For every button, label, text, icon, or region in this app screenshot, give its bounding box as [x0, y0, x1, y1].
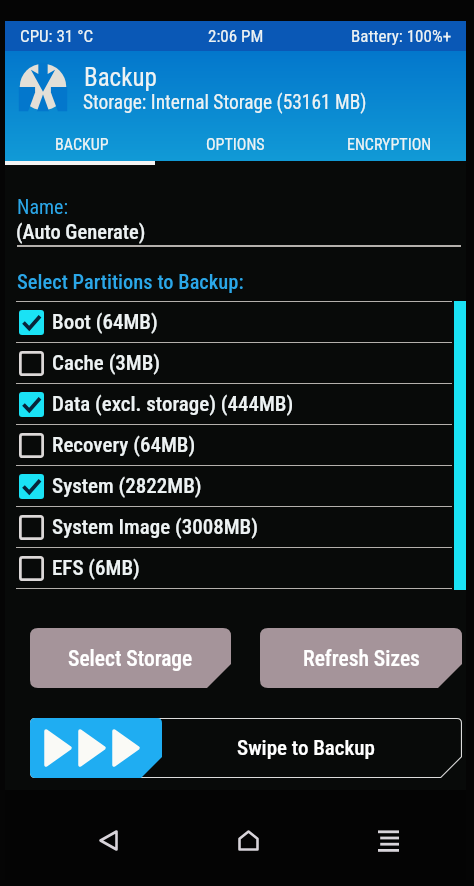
staticText: BACKUP [55, 135, 109, 154]
staticText: Refresh Sizes [303, 646, 420, 671]
staticText: Backup [84, 63, 157, 92]
button[interactable]: Recovery (64MB) [16, 425, 452, 466]
staticText: Name: [17, 195, 69, 218]
button[interactable]: Back [83, 815, 133, 865]
button[interactable]: Select Storage [30, 628, 231, 688]
button[interactable]: Cache (3MB) [16, 343, 452, 384]
staticText: Storage: Internal Storage (53161 MB) [83, 91, 367, 114]
staticText: Cache (3MB) [52, 351, 161, 376]
staticText: OPTIONS [206, 135, 265, 154]
button[interactable]: ENCRYPTION [312, 127, 466, 161]
staticText: (Auto Generate) [16, 220, 146, 244]
button[interactable]: Boot (64MB) [16, 302, 452, 343]
staticText: ENCRYPTION [347, 135, 432, 154]
staticText: System (2822MB) [52, 474, 202, 499]
staticText: EFS (6MB) [52, 556, 140, 581]
staticText: Select Partitions to Backup: [17, 270, 244, 294]
staticText: System Image (3008MB) [52, 515, 258, 540]
staticText: Battery: 100%+ [351, 26, 452, 46]
button[interactable]: BACKUP [5, 127, 158, 161]
button[interactable]: System Image (3008MB) [16, 507, 452, 548]
button[interactable]: Home [223, 815, 273, 865]
staticText: Recovery (64MB) [52, 433, 196, 458]
staticText: CPU: 31 °C [20, 26, 94, 46]
button[interactable]: Data (excl. storage) (444MB) [16, 384, 452, 425]
staticText: 2:06 PM [208, 26, 264, 46]
staticText: Swipe to Backup [237, 736, 375, 761]
button[interactable]: Swipe to Backup [30, 718, 462, 778]
button[interactable]: EFS (6MB) [16, 548, 452, 589]
staticText: Select Storage [68, 646, 193, 671]
button[interactable]: Refresh Sizes [260, 628, 462, 688]
button[interactable]: OPTIONS [158, 127, 312, 161]
button[interactable]: System (2822MB) [16, 466, 452, 507]
staticText: Boot (64MB) [52, 310, 158, 335]
button[interactable]: Menu [363, 815, 413, 865]
staticText: Data (excl. storage) (444MB) [52, 392, 294, 417]
